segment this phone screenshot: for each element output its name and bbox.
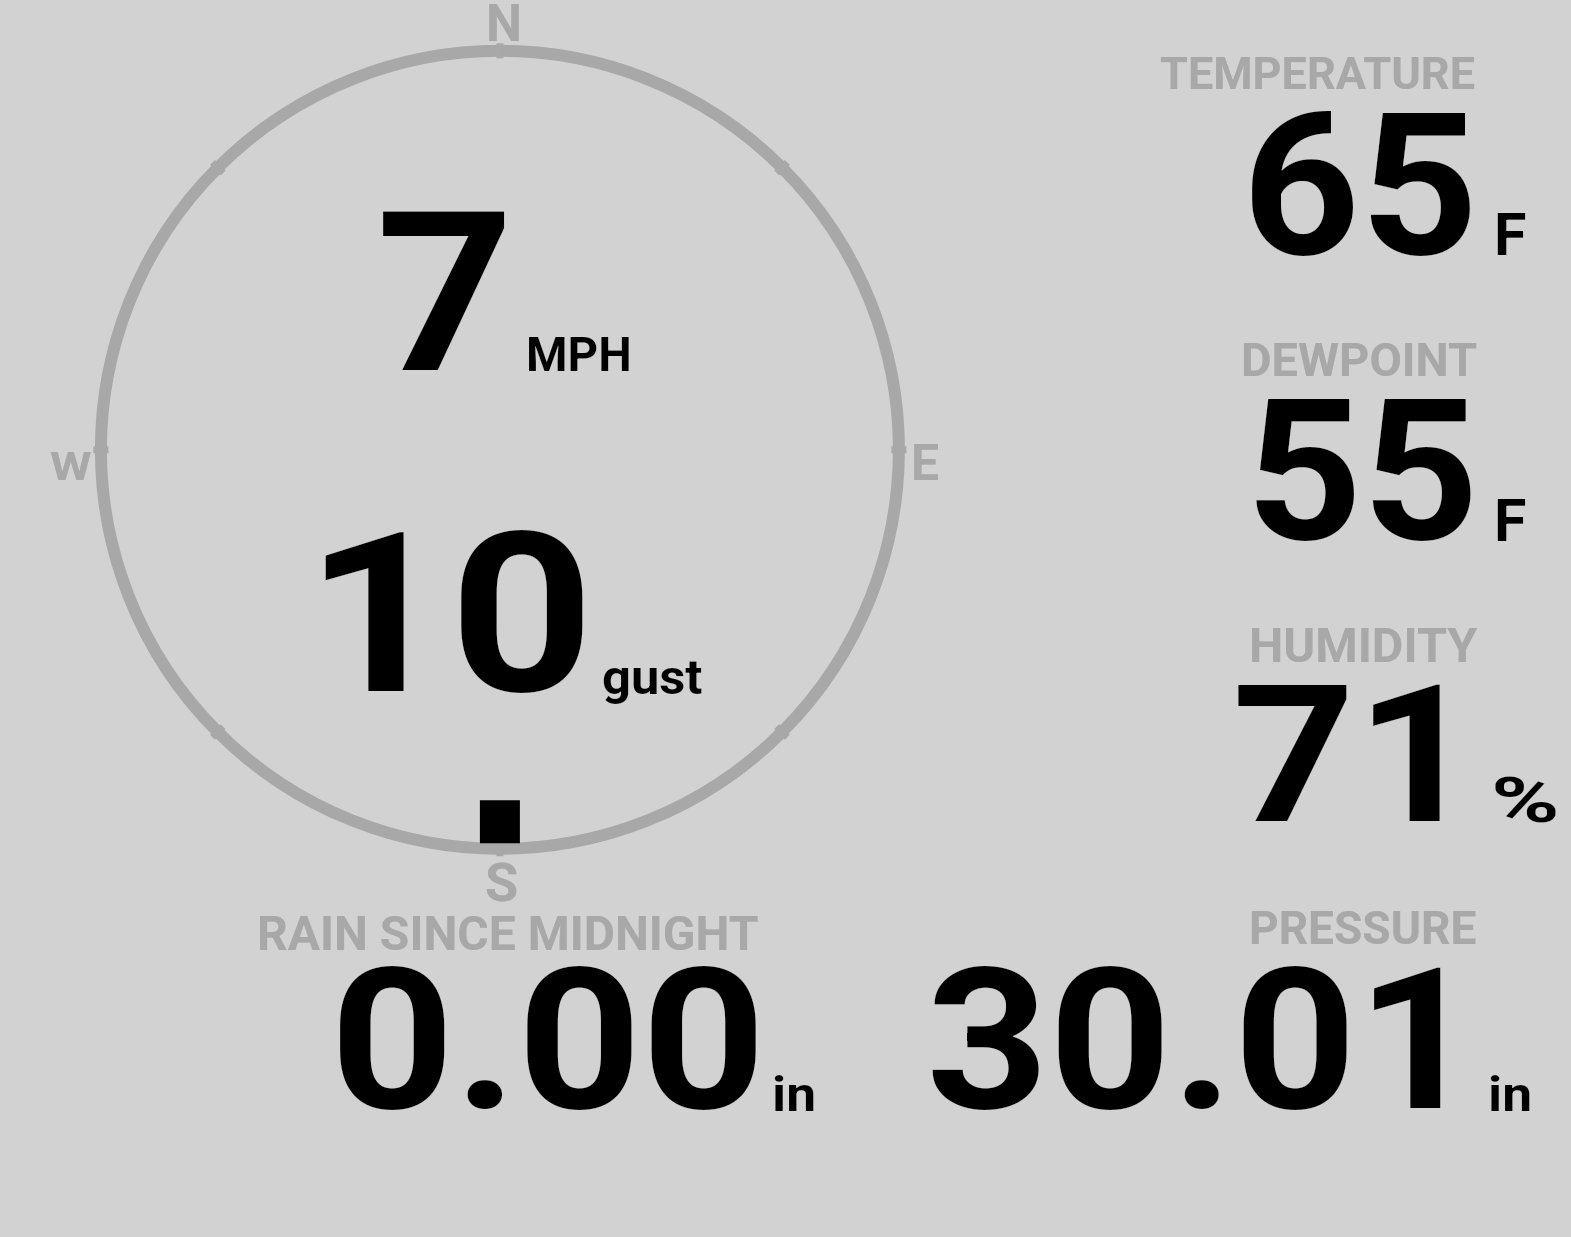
staticText: 71 [1232,643,1479,868]
staticText: HUMIDITY [1249,617,1478,674]
staticText: 30.01 [926,926,1480,1156]
staticText: RAIN SINCE MIDNIGHT [257,905,759,961]
staticText: in [1488,1066,1533,1123]
button[interactable]: Humidity 71 percent [1130,615,1560,830]
staticText: DEWPOINT [1241,332,1478,387]
button[interactable]: Wind direction dial, wind from the south [95,45,905,855]
staticText: F [1494,200,1527,269]
staticText: S [485,851,519,914]
staticText: 10 [305,484,594,745]
button[interactable]: Pressure 30.01 inches [900,900,1550,1120]
staticText: TEMPERATURE [1160,47,1475,100]
staticText: F [1494,486,1527,555]
button[interactable]: Rain since midnight 0.00 inches [240,905,830,1120]
staticText: in [772,1066,817,1123]
staticText: 0.00 [330,925,767,1156]
staticText: 55 [1246,357,1479,587]
staticText: gust [602,649,703,706]
button[interactable]: Temperature 65 degrees Fahrenheit [1130,40,1550,270]
staticText: N [486,0,522,54]
staticText: 7 [376,163,514,424]
staticText: % [1491,764,1561,838]
staticText: W [50,444,93,490]
staticText: PRESSURE [1249,901,1477,955]
staticText: 65 [1242,70,1479,302]
staticText: E [911,434,940,493]
button[interactable]: Dew point 55 degrees Fahrenheit [1130,330,1550,550]
staticText: MPH [526,327,632,383]
